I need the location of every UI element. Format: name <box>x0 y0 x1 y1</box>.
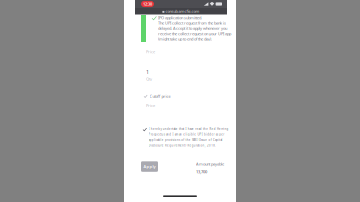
staticText: I hereby undertake that I have read the … <box>149 127 229 147</box>
staticText: Amount payable <box>196 161 224 167</box>
staticText: Price <box>146 103 155 108</box>
staticText: IPO application submitted. <box>158 15 202 20</box>
staticText: Cutoff price <box>150 93 171 99</box>
button[interactable]: Cutoff price <box>124 93 236 99</box>
staticText: 1 <box>146 68 149 75</box>
staticText: Price <box>146 49 155 54</box>
staticText: consub.amcfie.com <box>166 9 200 14</box>
button[interactable]: Apply <box>141 161 158 172</box>
staticText: Apply <box>143 164 155 169</box>
button[interactable]: I hereby undertake that I have read the … <box>124 127 236 147</box>
staticText: 12:30 <box>143 1 152 7</box>
staticText: Qty <box>146 76 152 81</box>
staticText: The UPI collect request from the bank is… <box>158 20 231 41</box>
staticText: 13,700 <box>196 169 207 174</box>
